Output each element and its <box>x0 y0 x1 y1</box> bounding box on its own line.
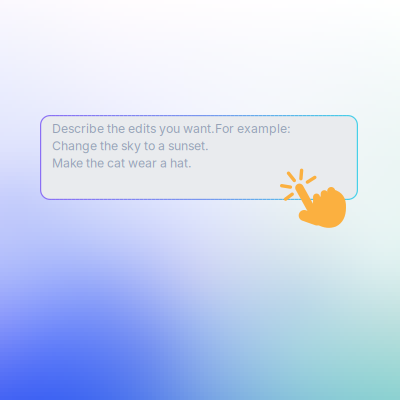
button[interactable]: Describe the edits you want.For example: <box>40 115 358 200</box>
staticText: Describe the edits you want.For example: <box>52 121 291 136</box>
staticText: Make the cat wear a hat. <box>52 156 192 170</box>
staticText: Change the sky to a sunset. <box>52 138 209 153</box>
